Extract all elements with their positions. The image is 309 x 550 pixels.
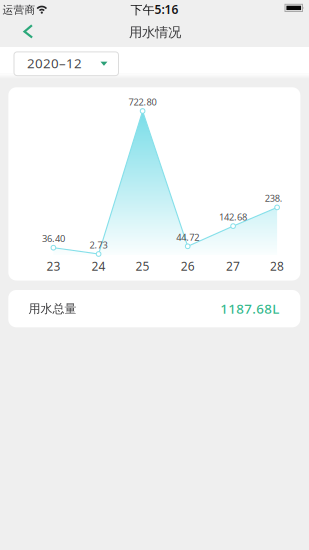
staticText: 26 [181,258,195,274]
staticText: 下午5:16 [130,1,178,17]
staticText: 25 [136,258,150,274]
staticText: 28 [270,258,284,274]
staticText: 2020–12 [27,54,82,72]
staticText: 722.80 [129,96,157,108]
button[interactable]: 2020–12 [14,52,118,76]
staticText: 用水总量 [28,301,76,316]
button[interactable] [12,16,42,46]
staticText: 27 [226,258,240,274]
staticText: 24 [92,258,106,274]
staticText: 142.68 [219,211,247,223]
staticText: 36.40 [42,232,65,245]
staticText: 1187.68L [220,300,279,317]
staticText: 运营商 [2,3,35,16]
staticText: 2.73 [90,239,108,251]
staticText: 44.72 [176,231,199,243]
staticText: 23 [46,258,60,274]
staticText: 238. [265,192,283,204]
staticText: 用水情况 [129,24,181,40]
